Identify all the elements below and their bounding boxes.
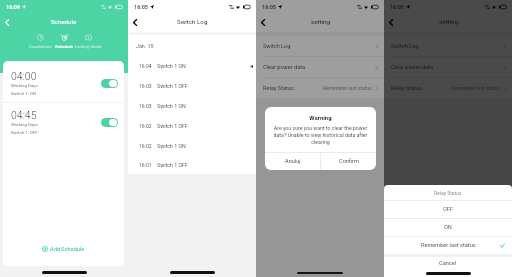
staticText: 16:05 [390,4,404,10]
staticText: Switch 1 OFF [157,162,188,168]
button[interactable]: 16:04 [128,56,256,76]
button[interactable]: ON [384,219,512,236]
button[interactable]: Back [0,15,14,29]
staticText: setting [311,18,330,25]
staticText: 04:00 [11,70,37,82]
staticText: Relay Status [263,85,294,92]
button[interactable]: Add Schedule [3,237,124,261]
staticText: Confirm [339,158,359,165]
staticText: Relay Status [391,85,422,92]
staticText: 16:03 [139,103,152,109]
staticText: Switch 1 OFF [157,83,188,89]
staticText: 16:05 [134,4,148,10]
staticText: Add Schedule [50,246,85,253]
staticText: Remember last status [323,85,372,91]
staticText: Switch Log [263,43,291,50]
staticText: Switch 1 ON [157,143,186,149]
button[interactable]: Confirm [321,153,376,170]
staticText: Switch 1 ON [157,63,186,69]
staticText: 16:05 [262,4,276,10]
staticText: Clear power data [391,64,434,71]
button[interactable]: Clear power data [256,57,384,77]
staticText: 16:02 [139,143,152,149]
staticText: Anuluj [285,158,301,165]
button[interactable]: Switch Log [384,36,512,56]
staticText: 04:45 [11,109,37,121]
staticText: Switch 1 ON [157,103,186,109]
button[interactable]: Back [128,15,142,29]
button[interactable]: 04:45 [3,103,124,141]
button[interactable]: Inching Mode [76,34,100,49]
staticText: Are you sure you want to clear the power… [267,125,374,145]
staticText: Switch 1: OFF [11,130,38,135]
staticText: Jan. 15 [136,43,154,49]
button[interactable]: Relay Status [384,78,512,98]
staticText: 16:01 [139,162,152,168]
button[interactable]: Enable schedule [101,118,118,127]
staticText: 16:03 [139,83,152,89]
staticText: Working Days [11,83,38,88]
button[interactable]: 04:00 [3,64,124,102]
button[interactable]: Clear power data [384,57,512,77]
button[interactable]: 16:02 [128,136,256,156]
button[interactable]: 16:01 [128,156,256,174]
button[interactable]: Back [256,15,270,29]
button[interactable]: Back [384,15,398,29]
staticText: Warning [265,114,376,121]
staticText: Countdown [29,44,52,49]
button[interactable]: Enable schedule [101,79,118,88]
staticText: Switch Log [391,43,419,50]
staticText: Remember last status [451,85,500,91]
staticText: Working Days [11,122,38,127]
button[interactable]: Relay Status [256,78,384,98]
staticText: 16:04 [139,63,152,69]
staticText: Inching Mode [75,44,102,49]
staticText: Remember last status [421,242,476,249]
button[interactable]: OFF [384,201,512,218]
staticText: Cancel [439,260,457,267]
staticText: Relay Status [434,190,462,196]
staticText: setting [439,18,458,25]
staticText: Schedule [55,44,74,49]
staticText: 16:04 [6,4,20,10]
button[interactable]: 16:02 [128,116,256,136]
button[interactable]: Anuluj [265,153,320,170]
button[interactable]: Switch Log [256,36,384,56]
staticText: Schedule [51,18,77,25]
button[interactable]: Remember last status [384,237,512,254]
staticText: Switch 1: ON [11,91,36,96]
button[interactable]: Cancel [384,257,512,270]
button[interactable]: Schedule [52,34,76,49]
button[interactable]: 16:03 [128,76,256,96]
staticText: Switch Log [177,18,208,25]
button[interactable]: 16:03 [128,96,256,116]
staticText: ON [444,224,452,231]
staticText: OFF [443,206,454,213]
staticText: Clear power data [263,64,306,71]
staticText: Switch 1 OFF [157,123,188,129]
button[interactable]: Countdown [28,34,52,49]
staticText: 16:02 [139,123,152,129]
